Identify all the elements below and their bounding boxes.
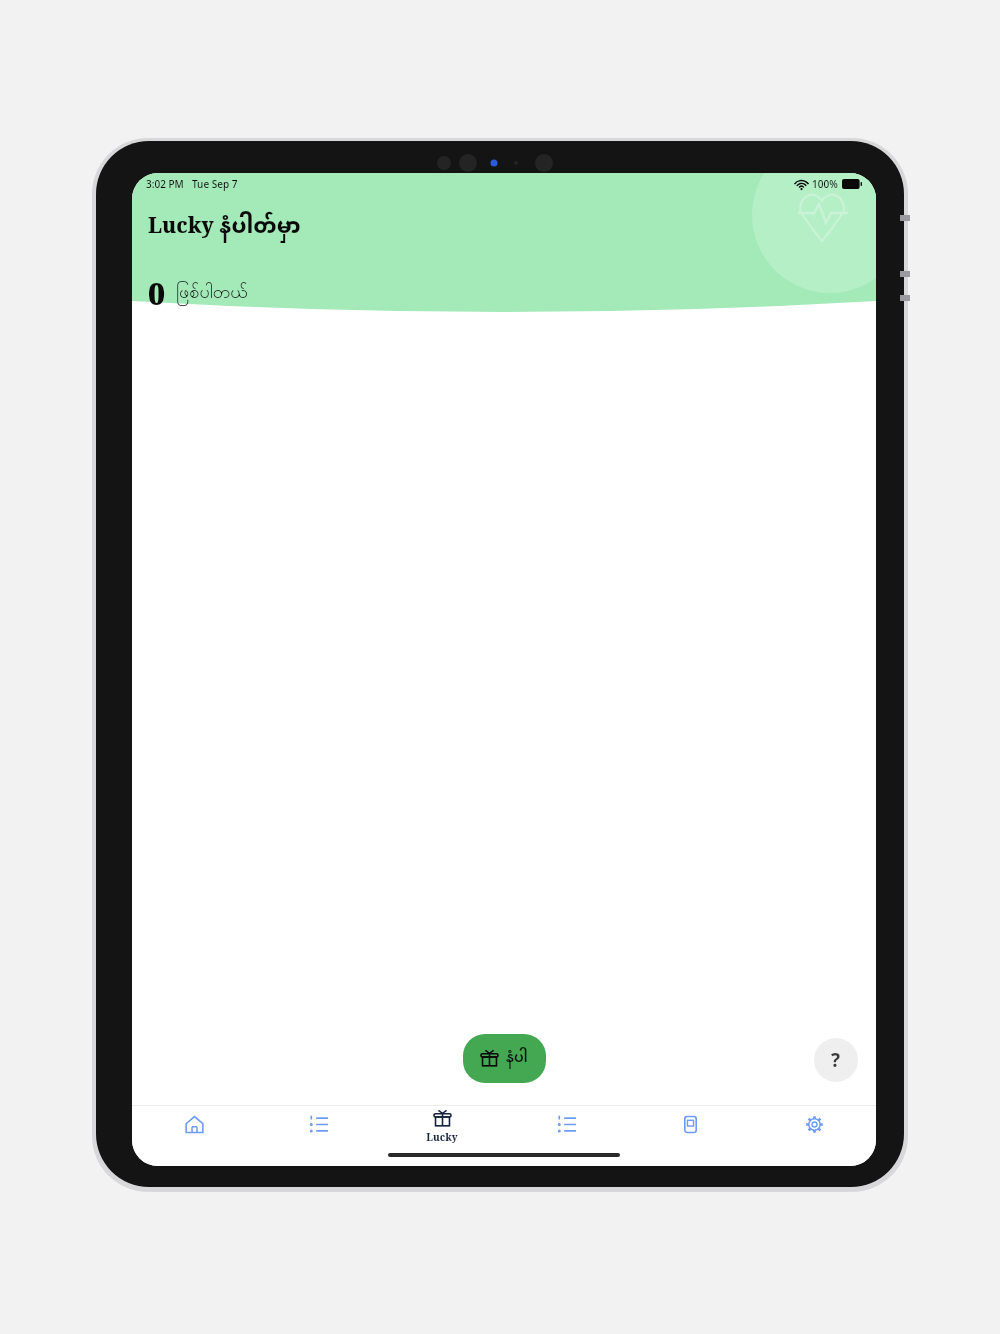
button[interactable]: Settings xyxy=(752,1106,876,1148)
button[interactable]: Help xyxy=(814,1038,858,1082)
button[interactable]: Records xyxy=(504,1106,628,1148)
staticText: Lucky xyxy=(426,1130,458,1144)
staticText: 100% xyxy=(812,177,838,191)
button[interactable]: List xyxy=(256,1106,380,1148)
staticText: Tue Sep 7 xyxy=(192,177,238,191)
staticText: 0 xyxy=(148,273,166,314)
button[interactable]: Home xyxy=(132,1106,256,1148)
button[interactable]: Lucky xyxy=(380,1106,504,1148)
staticText: ? xyxy=(831,1047,841,1073)
staticText: ဖြစ်ပါတယ် xyxy=(176,280,248,307)
button[interactable]: နံပါ xyxy=(463,1034,546,1083)
staticText: 3:02 PM xyxy=(146,177,184,191)
staticText: Lucky နံပါတ်မှာ xyxy=(148,205,301,251)
button[interactable]: Phone xyxy=(628,1106,752,1148)
staticText: နံပါ xyxy=(506,1043,528,1074)
